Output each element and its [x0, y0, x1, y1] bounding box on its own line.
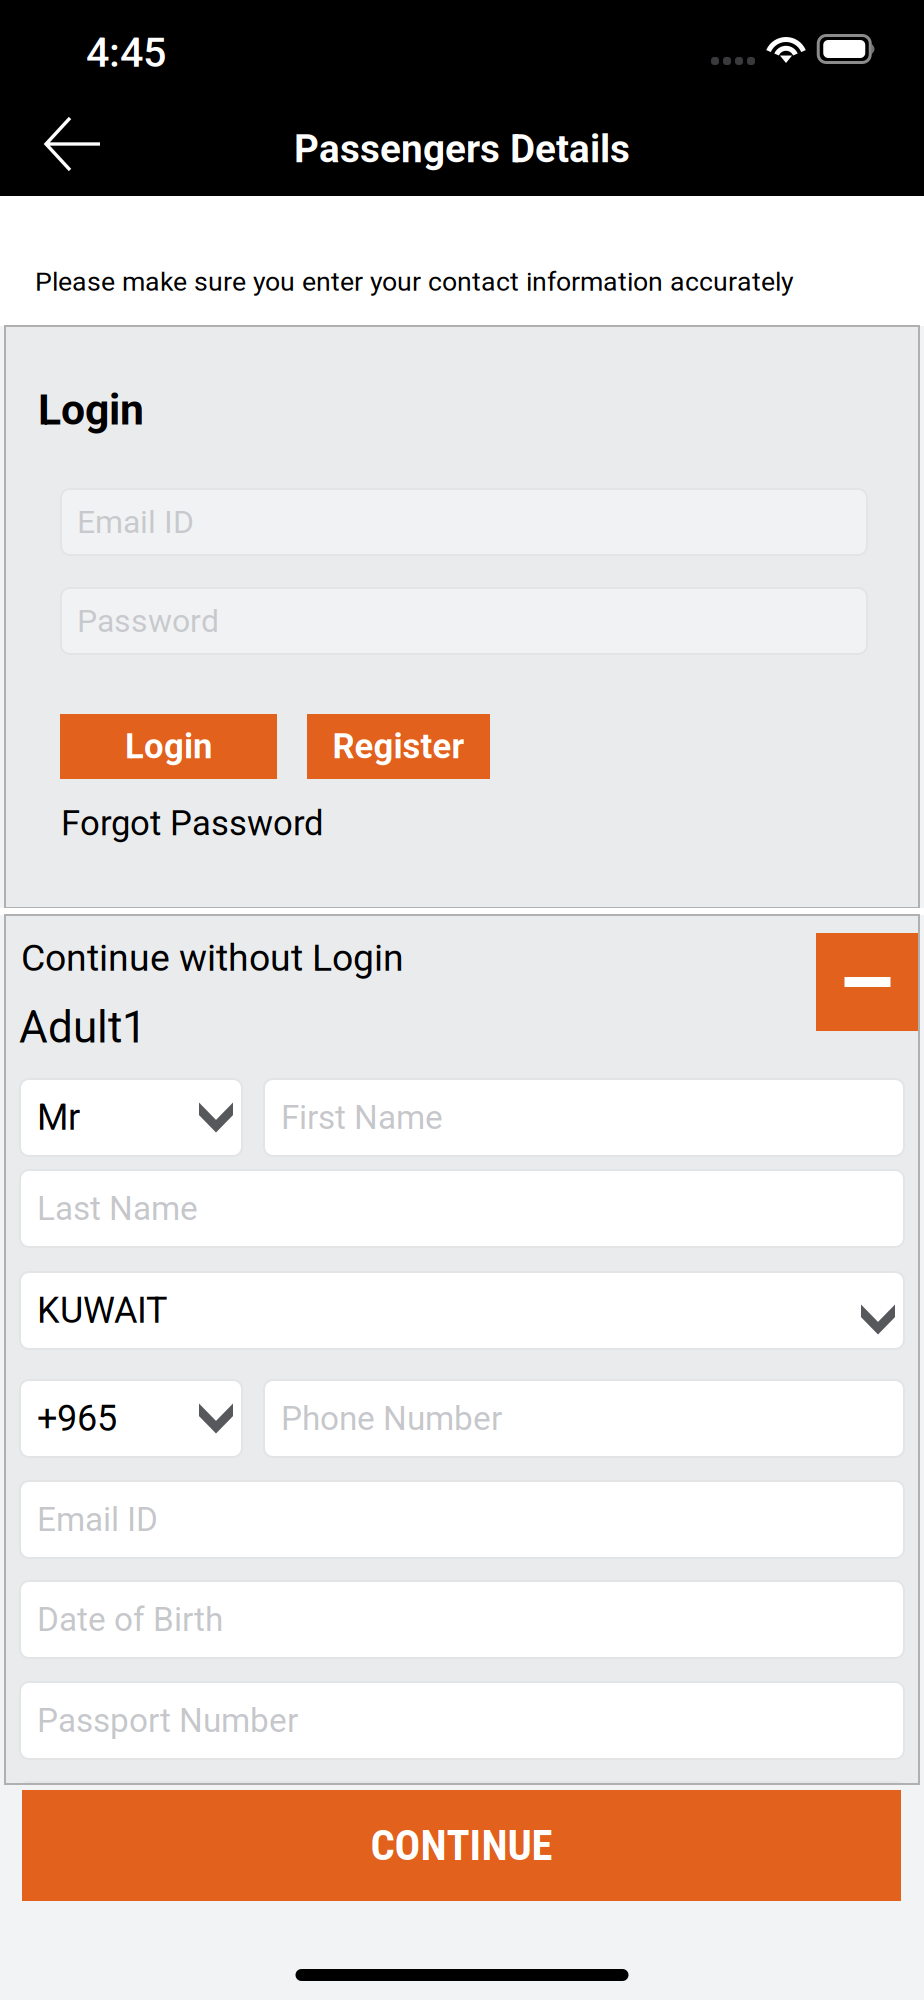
- button[interactable]: +965: [20, 1380, 242, 1457]
- button[interactable]: Date of Birth: [20, 1581, 904, 1658]
- staticText: Last Name: [37, 1189, 198, 1228]
- staticText: Adult1: [19, 1002, 147, 1053]
- button[interactable]: [20, 1782, 904, 1859]
- staticText: Passport Number: [37, 1701, 298, 1740]
- staticText: Phone Number: [281, 1399, 502, 1438]
- staticText: Date of Birth: [37, 1600, 223, 1639]
- staticText: Login: [38, 385, 144, 435]
- button[interactable]: Forgot Password: [5, 779, 919, 858]
- staticText: Forgot Password: [61, 803, 324, 844]
- button[interactable]: Last Name: [20, 1170, 904, 1247]
- staticText: Email ID: [77, 503, 194, 541]
- staticText: Login: [125, 726, 212, 767]
- button[interactable]: Back: [0, 96, 150, 196]
- button[interactable]: Passport Number: [20, 1682, 904, 1759]
- staticText: Password: [77, 602, 219, 640]
- staticText: +965: [37, 1397, 117, 1440]
- button[interactable]: Login: [60, 714, 277, 779]
- button[interactable]: Register: [307, 714, 490, 779]
- staticText: Mr: [37, 1096, 80, 1139]
- button[interactable]: First Name: [264, 1079, 904, 1156]
- staticText: Register: [332, 726, 464, 767]
- button[interactable]: KUWAIT: [20, 1272, 904, 1349]
- button[interactable]: Email ID: [61, 489, 867, 555]
- staticText: CONTINUE: [370, 1820, 552, 1870]
- staticText: Email ID: [37, 1500, 158, 1539]
- staticText: Please make sure you enter your contact …: [35, 266, 794, 297]
- button[interactable]: Phone Number: [264, 1380, 904, 1457]
- staticText: Continue without Login: [21, 936, 404, 980]
- button[interactable]: Password: [61, 588, 867, 654]
- staticText: KUWAIT: [37, 1289, 167, 1332]
- button[interactable]: Mr: [20, 1079, 242, 1156]
- button[interactable]: Email ID: [20, 1481, 904, 1558]
- staticText: Passengers Details: [294, 126, 630, 172]
- staticText: 4:45: [86, 28, 166, 77]
- button[interactable]: CONTINUE: [22, 1790, 901, 1901]
- button[interactable]: Collapse passenger details: [816, 933, 919, 1031]
- staticText: First Name: [281, 1098, 443, 1137]
